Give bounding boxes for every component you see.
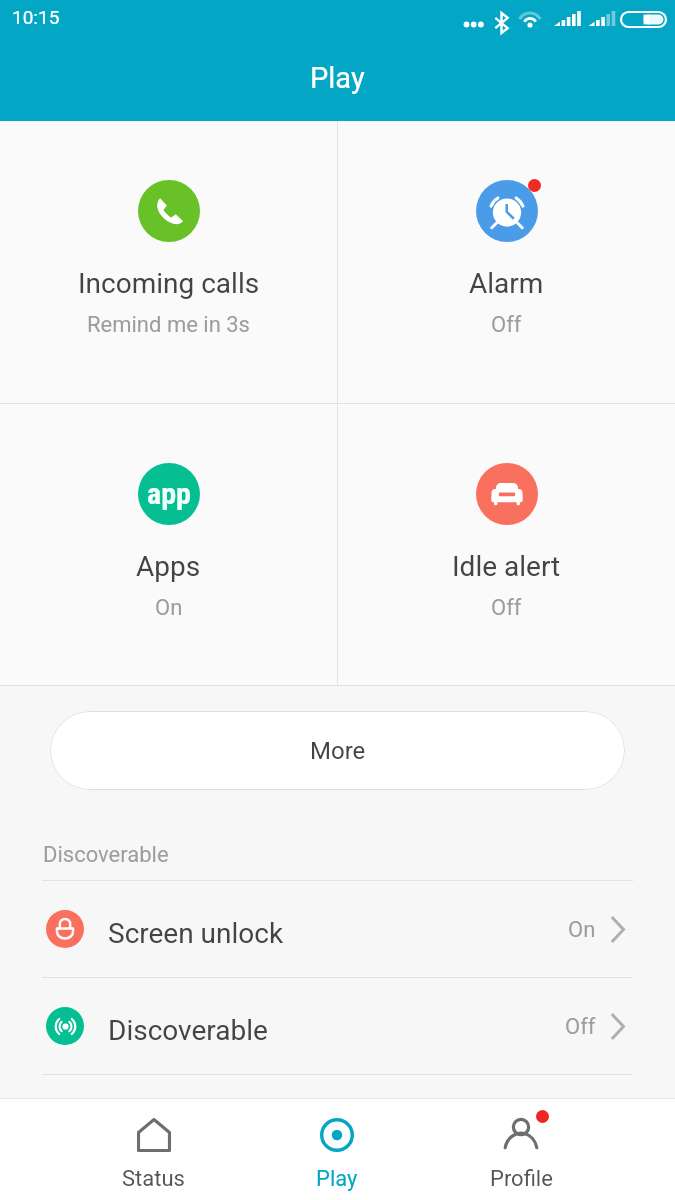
- staticText: Discoverable: [43, 842, 169, 868]
- staticText: Incoming calls: [78, 267, 260, 300]
- staticText: Apps: [136, 550, 201, 583]
- staticText: Status: [122, 1166, 185, 1192]
- staticText: Alarm: [469, 267, 544, 300]
- button[interactable]: Apps, On: [0, 404, 337, 685]
- button[interactable]: Idle alert, Off: [338, 404, 675, 685]
- staticText: Discoverable: [108, 1014, 268, 1047]
- button[interactable]: Profile: [429, 1099, 613, 1200]
- staticText: app: [147, 476, 191, 511]
- staticText: Idle alert: [452, 550, 561, 583]
- staticText: Play: [316, 1166, 358, 1192]
- staticText: Play: [310, 61, 365, 95]
- button[interactable]: Alarm, Off: [338, 121, 675, 403]
- button[interactable]: Discoverable, Off: [0, 978, 675, 1074]
- staticText: Screen unlock: [108, 917, 284, 950]
- button[interactable]: Incoming calls, Remind me in 3s: [0, 121, 337, 403]
- staticText: On: [568, 917, 596, 943]
- staticText: Off: [491, 312, 522, 338]
- staticText: Remind me in 3s: [87, 312, 250, 338]
- button[interactable]: Play: [245, 1099, 429, 1200]
- staticText: 10:15: [12, 6, 60, 28]
- staticText: More: [310, 737, 366, 765]
- staticText: Off: [491, 595, 522, 621]
- staticText: Off: [565, 1014, 596, 1040]
- staticText: Profile: [490, 1166, 553, 1192]
- staticText: On: [155, 595, 183, 621]
- button[interactable]: Screen unlock, On: [0, 881, 675, 977]
- button[interactable]: Status: [62, 1099, 245, 1200]
- button[interactable]: More: [50, 711, 625, 790]
